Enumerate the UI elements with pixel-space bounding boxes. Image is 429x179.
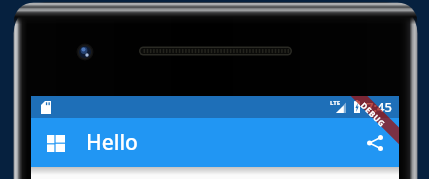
button[interactable]: Dashboard menu	[37, 124, 75, 162]
button[interactable]: Share	[356, 124, 394, 162]
staticText: Hello	[86, 128, 138, 157]
staticText: 7:45	[366, 98, 392, 116]
other: SD card	[41, 101, 51, 114]
staticText: LTE	[330, 99, 341, 107]
